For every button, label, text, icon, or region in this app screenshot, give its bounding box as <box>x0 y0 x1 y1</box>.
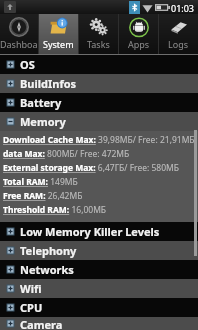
other: Upload <box>4 1 16 13</box>
button[interactable]: Wifi <box>0 279 198 298</box>
staticText: Dashboard <box>0 38 38 50</box>
staticText: CPU <box>20 300 43 315</box>
button[interactable]: Memory <box>0 112 198 131</box>
staticText: Threshold RAM: 16,00МБ <box>3 204 107 216</box>
staticText: BuildInfos <box>20 76 77 91</box>
staticText: OS <box>20 57 35 72</box>
button[interactable]: Dashboard <box>0 14 38 54</box>
staticText: Wifi <box>20 281 42 296</box>
staticText: System <box>43 38 74 50</box>
staticText: data Max: 800МБ/ Free: 472МБ <box>3 148 130 160</box>
staticText: Telephony <box>20 243 77 258</box>
staticText: Apps <box>128 38 150 50</box>
button[interactable]: Low Memory Killer Levels <box>0 222 198 241</box>
button[interactable]: CPU <box>0 298 198 317</box>
button[interactable]: Networks <box>0 260 198 279</box>
staticText: 01:03 <box>171 2 195 14</box>
button[interactable]: BuildInfos <box>0 74 198 93</box>
staticText: Logs <box>168 38 189 50</box>
staticText: Camera <box>20 317 63 330</box>
button[interactable]: Apps <box>119 14 158 54</box>
staticText: Total RAM: 149МБ <box>3 176 78 188</box>
staticText: Memory <box>20 114 66 129</box>
staticText: Free RAM: 26,42МБ <box>3 190 83 202</box>
staticText: Battery <box>20 95 62 110</box>
staticText: Low Memory Killer Levels <box>20 224 160 239</box>
button[interactable]: Telephony <box>0 241 198 260</box>
button[interactable]: Logs <box>159 14 198 54</box>
button[interactable]: System <box>39 14 78 54</box>
staticText: Tasks <box>87 38 110 50</box>
staticText: External storage Max: 6,47ГБ/ Free: 580М… <box>3 162 179 174</box>
button[interactable]: Camera <box>0 317 198 330</box>
staticText: Download Cache Max: 39,98МБ/ Free: 21,91… <box>3 134 195 146</box>
staticText: Networks <box>20 262 74 277</box>
button[interactable]: Tasks <box>79 14 118 54</box>
button[interactable]: OS <box>0 55 198 74</box>
button[interactable]: Battery <box>0 93 198 112</box>
